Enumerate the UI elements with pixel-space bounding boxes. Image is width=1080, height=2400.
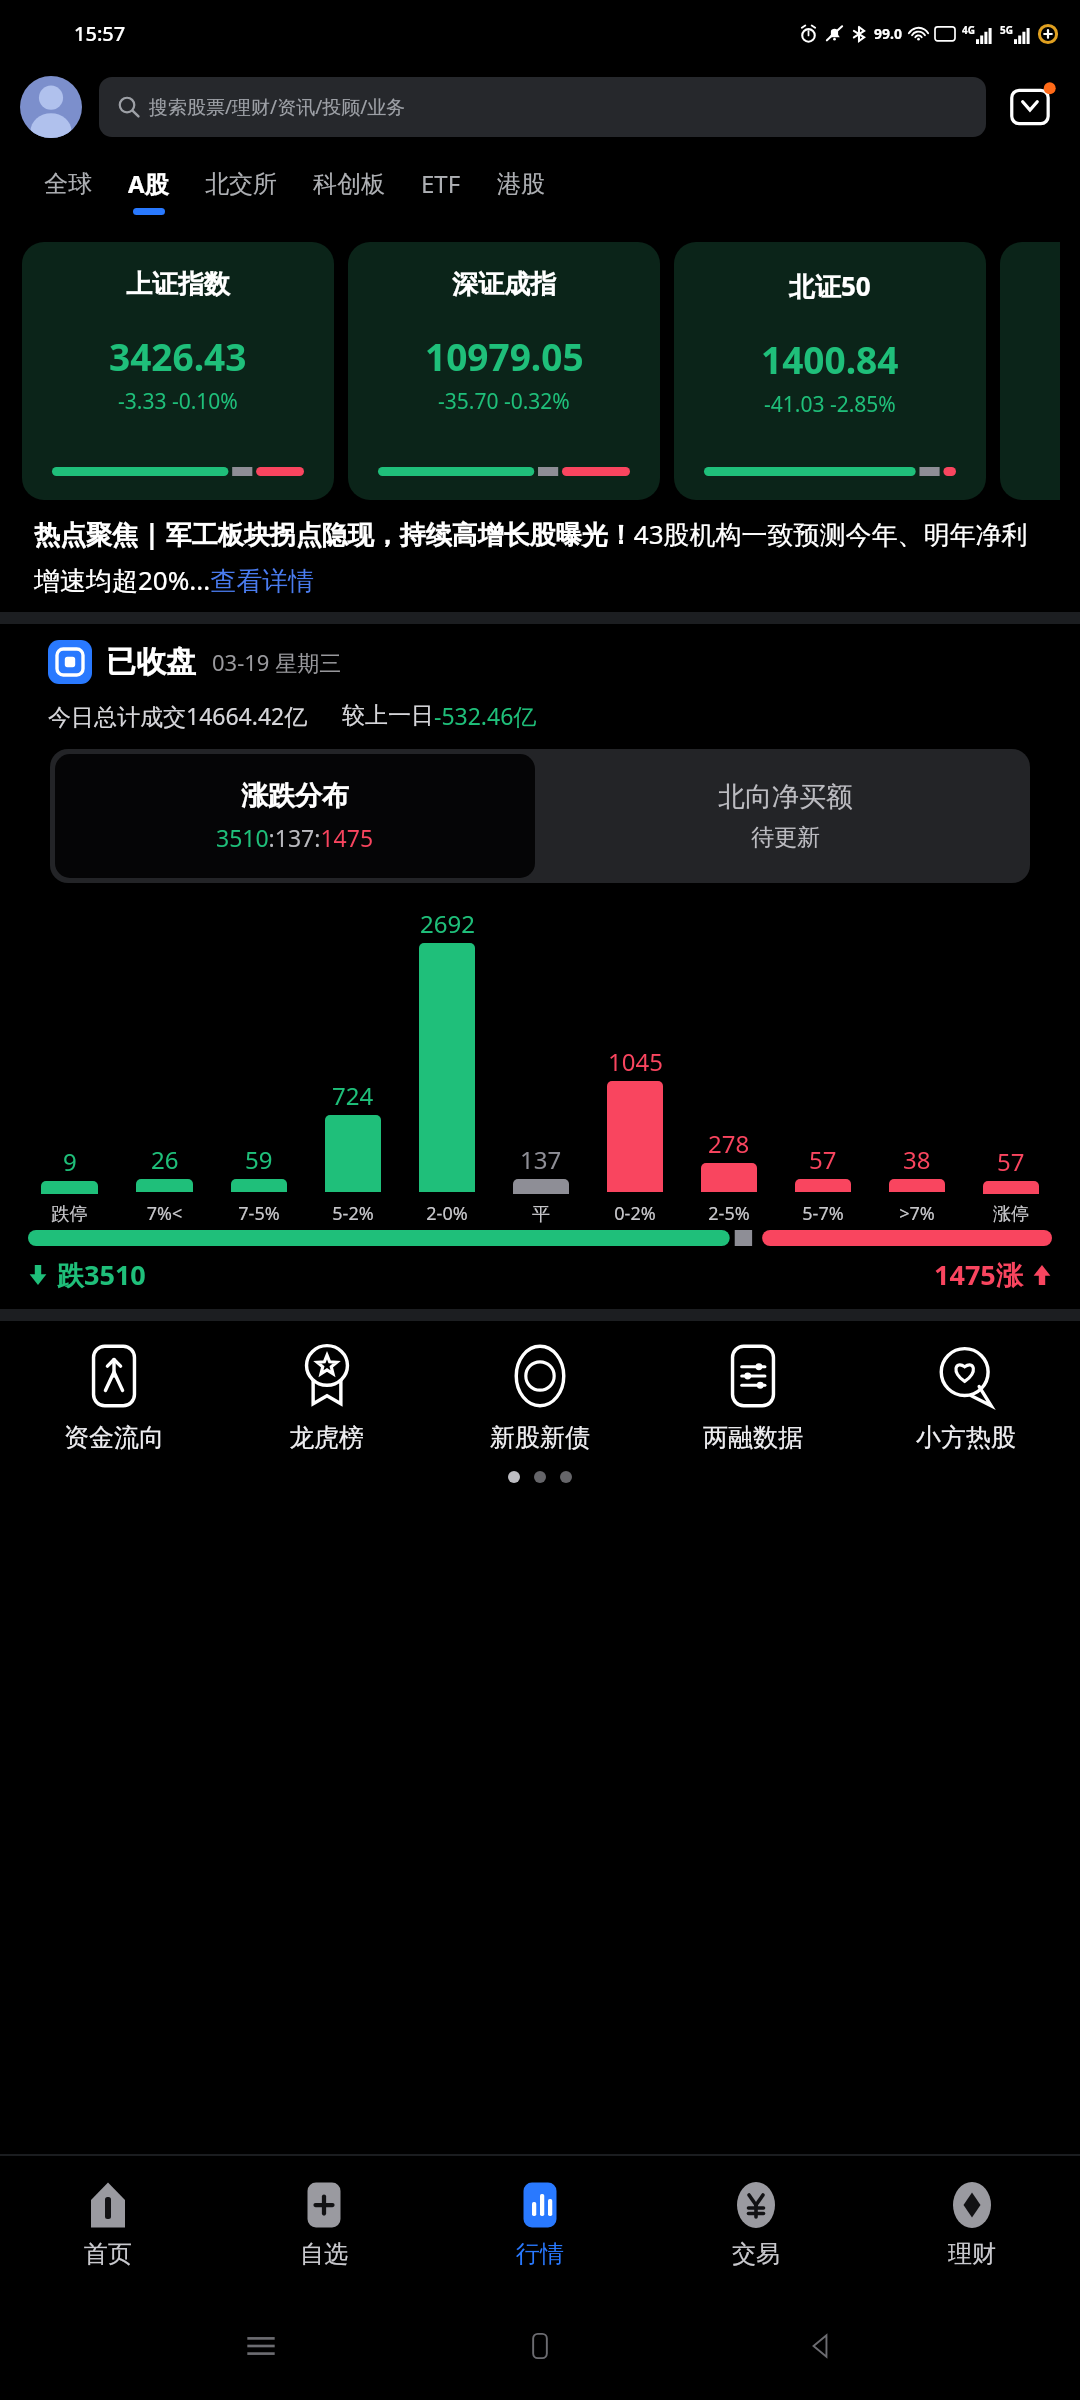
staticText: 平 <box>494 1203 588 1226</box>
button[interactable]: 港股 <box>479 148 563 234</box>
button[interactable]: ETF <box>403 148 479 234</box>
staticText: -35.70 -0.32% <box>438 387 570 416</box>
staticText: 38 <box>903 1143 931 1176</box>
button[interactable]: 首页 <box>0 2156 216 2292</box>
staticText: 3426.43 <box>109 331 247 381</box>
staticText: -532.46亿 <box>434 700 537 731</box>
staticText: 57 <box>997 1145 1025 1178</box>
staticText: 1400.84 <box>761 334 899 384</box>
staticText: 深证成指 <box>452 268 556 301</box>
staticText: 137 <box>520 1143 562 1176</box>
button[interactable]: 9 <box>22 909 117 1226</box>
staticText: 较上一日 <box>342 701 434 730</box>
button[interactable]: 上证指数 <box>22 242 334 500</box>
staticText: 03-19 星期三 <box>212 647 342 677</box>
button[interactable]: Messages <box>1002 78 1060 136</box>
staticText: 科创板 <box>313 169 385 199</box>
button[interactable]: 龙虎榜 <box>220 1339 433 1457</box>
staticText: 理财 <box>948 2239 996 2269</box>
staticText: 跌停 <box>22 1203 117 1226</box>
button[interactable]: 热点聚焦 | 军工板块拐点隐现，持续高增长股曝光！43股机构一致预测今年、明年净… <box>34 516 1046 598</box>
staticText: 5-2% <box>306 1201 400 1226</box>
staticText: 今日总计成交14664.42亿 <box>48 700 308 731</box>
staticText: 15:57 <box>74 20 126 47</box>
staticText: ETF <box>421 167 461 200</box>
staticText: 涨停 <box>964 1203 1058 1226</box>
button[interactable]: 1045 <box>588 907 682 1226</box>
button[interactable]: 已收盘 <box>48 640 1080 684</box>
staticText: 北证50 <box>789 268 871 304</box>
staticText: 724 <box>332 1079 374 1112</box>
staticText: 7-5% <box>212 1201 306 1226</box>
staticText: 港股 <box>497 169 545 199</box>
staticText: 资金流向 <box>64 1422 164 1453</box>
button[interactable]: Recents <box>242 2327 280 2365</box>
staticText: 3510:137:1475 <box>216 822 374 853</box>
button[interactable]: 小方热股 <box>859 1339 1072 1457</box>
button[interactable]: 交易 <box>648 2156 864 2292</box>
button[interactable]: 26 <box>117 907 212 1226</box>
button[interactable]: 科创板 <box>295 148 403 234</box>
staticText: 1475涨 <box>934 1256 1023 1293</box>
staticText: 2-0% <box>400 1201 494 1226</box>
staticText: -3.33 -0.10% <box>118 387 238 416</box>
button[interactable]: 涨跌分布 <box>55 754 535 878</box>
staticText: 10979.05 <box>425 331 584 381</box>
button[interactable]: 两融数据 <box>646 1339 859 1457</box>
button[interactable]: Back <box>801 2327 839 2365</box>
button[interactable]: 搜索股票/理财/资讯/投顾/业务 <box>99 77 986 137</box>
button[interactable]: 资金流向 <box>8 1339 220 1457</box>
staticText: 行情 <box>516 2239 564 2269</box>
button[interactable]: 北证50 <box>674 242 986 500</box>
button[interactable]: 57 <box>776 907 870 1226</box>
button[interactable]: 自选 <box>216 2156 432 2292</box>
staticText: 4G <box>962 23 975 37</box>
button[interactable]: Home <box>521 2327 559 2365</box>
button[interactable]: 137 <box>494 909 588 1226</box>
button[interactable]: 新股新债 <box>433 1339 646 1457</box>
button[interactable]: 724 <box>306 907 400 1226</box>
staticText: 首页 <box>84 2239 132 2269</box>
staticText: 上证指数 <box>126 268 230 301</box>
staticText: 2-5% <box>682 1201 776 1226</box>
staticText: 全球 <box>44 169 92 199</box>
staticText: 涨跌分布 <box>241 779 349 813</box>
staticText: 交易 <box>732 2239 780 2269</box>
button[interactable]: 北向净买额 <box>540 749 1030 883</box>
button[interactable]: 59 <box>212 907 306 1226</box>
staticText: -41.03 -2.85% <box>764 390 896 419</box>
staticText: 搜索股票/理财/资讯/投顾/业务 <box>149 94 406 120</box>
staticText: 5-7% <box>776 1201 870 1226</box>
staticText: 2692 <box>420 907 475 940</box>
button[interactable]: A股 <box>110 148 187 234</box>
button[interactable]: 57 <box>964 909 1058 1226</box>
staticText: 已收盘 <box>106 643 196 681</box>
staticText: 9 <box>63 1145 77 1178</box>
button[interactable]: 全球 <box>26 148 110 234</box>
button[interactable]: 北交所 <box>187 148 295 234</box>
button[interactable]: 行情 <box>432 2156 648 2292</box>
staticText: 龙虎榜 <box>289 1422 364 1453</box>
staticText: 1045 <box>608 1045 663 1078</box>
staticText: 57 <box>809 1143 837 1176</box>
staticText: A股 <box>128 167 169 200</box>
button[interactable]: 38 <box>870 907 964 1226</box>
staticText: 26 <box>151 1143 179 1176</box>
staticText: 7%< <box>117 1201 212 1226</box>
staticText: 5G <box>1000 23 1013 37</box>
button[interactable]: Profile <box>20 76 82 138</box>
button[interactable]: 深证成指 <box>348 242 660 500</box>
button[interactable]: 2692 <box>400 907 494 1226</box>
staticText: 自选 <box>300 2239 348 2269</box>
staticText: 0-2% <box>588 1201 682 1226</box>
staticText: 北向净买额 <box>718 780 853 814</box>
staticText: 两融数据 <box>703 1422 803 1453</box>
button[interactable]: 278 <box>682 907 776 1226</box>
staticText: 小方热股 <box>916 1422 1016 1453</box>
staticText: 99.0 <box>874 24 902 43</box>
staticText: >7% <box>870 1201 964 1226</box>
staticText: 北交所 <box>205 169 277 199</box>
button[interactable]: 理财 <box>864 2156 1080 2292</box>
staticText: 278 <box>708 1127 750 1160</box>
staticText: 待更新 <box>751 823 820 852</box>
